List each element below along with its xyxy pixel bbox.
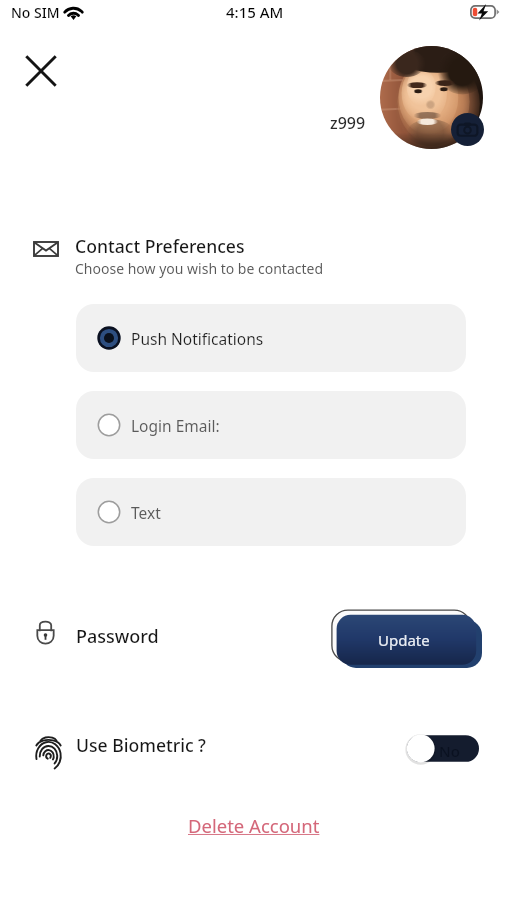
staticText: Update — [378, 630, 430, 650]
button[interactable]: Change profile photo — [451, 113, 484, 146]
button[interactable]: Use biometric toggle — [405, 730, 481, 767]
staticText: Push Notifications — [131, 328, 264, 349]
button[interactable]: Text — [76, 478, 466, 546]
button[interactable]: Password — [20, 610, 310, 656]
staticText: Text — [131, 502, 161, 523]
staticText: Login Email: — [131, 415, 220, 436]
staticText: No SIM — [11, 3, 60, 22]
button[interactable]: Profile photo — [380, 46, 483, 149]
staticText: Use Biometric ? — [76, 733, 206, 757]
staticText: z999 — [330, 112, 366, 134]
staticText: No — [439, 741, 460, 761]
button[interactable]: Close — [22, 52, 60, 90]
button[interactable]: Delete Account — [181, 806, 327, 844]
staticText: Choose how you wish to be contacted — [75, 259, 324, 278]
button[interactable]: Push Notifications — [76, 304, 466, 372]
staticText: Password — [76, 624, 159, 649]
button[interactable]: Update — [331, 609, 484, 671]
button[interactable]: Use Biometric ? — [22, 728, 312, 772]
button[interactable]: Login Email: — [76, 391, 466, 459]
staticText: Contact Preferences — [75, 234, 245, 258]
button[interactable]: Contact Preferences — [20, 228, 350, 286]
staticText: Delete Account — [188, 813, 320, 838]
staticText: 4:15 AM — [226, 2, 284, 22]
